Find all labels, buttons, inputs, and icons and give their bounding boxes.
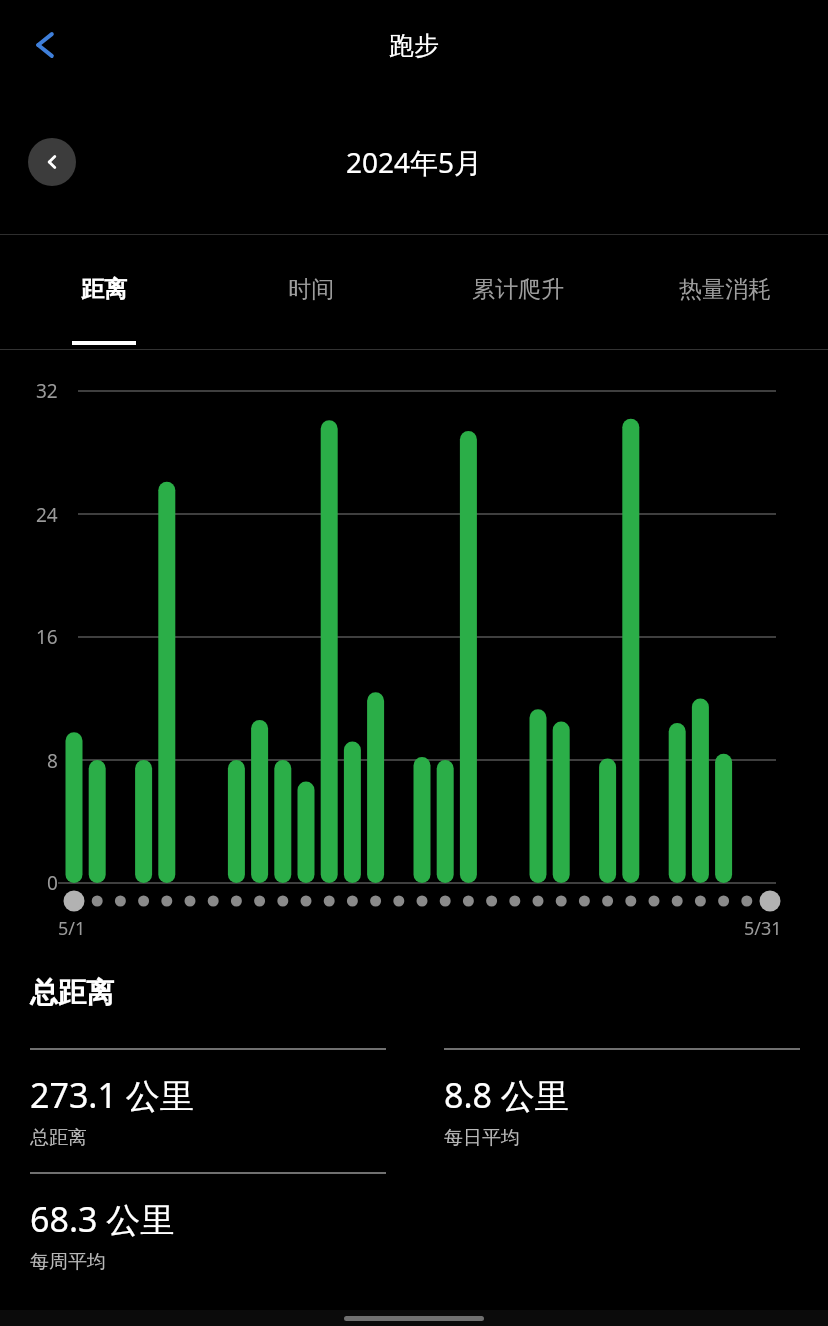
staticText: 68.3 公里 bbox=[30, 1196, 175, 1242]
staticText: 跑步 bbox=[389, 30, 439, 61]
button[interactable]: 时间 bbox=[207, 235, 414, 350]
button[interactable]: 累计爬升 bbox=[414, 235, 621, 350]
staticText: 5/31 bbox=[744, 916, 782, 941]
button[interactable]: 68.3 公里 bbox=[30, 1172, 386, 1296]
button[interactable]: Previous month bbox=[28, 138, 76, 186]
staticText: 8 bbox=[47, 748, 58, 774]
staticText: 每日平均 bbox=[444, 1126, 520, 1150]
staticText: 0 bbox=[47, 870, 58, 896]
button[interactable]: 距离 bbox=[0, 235, 207, 350]
staticText: 累计爬升 bbox=[472, 275, 564, 304]
button[interactable]: 热量消耗 bbox=[621, 235, 828, 350]
staticText: 总距离 bbox=[30, 975, 114, 1010]
staticText: 32 bbox=[36, 378, 58, 404]
button[interactable]: 8.8 公里 bbox=[444, 1048, 800, 1172]
staticText: 热量消耗 bbox=[679, 275, 771, 304]
staticText: 每周平均 bbox=[30, 1250, 106, 1274]
staticText: 24 bbox=[36, 502, 58, 528]
button[interactable]: 273.1 公里 bbox=[30, 1048, 386, 1172]
staticText: 8.8 公里 bbox=[444, 1072, 569, 1118]
staticText: 16 bbox=[36, 624, 58, 650]
button[interactable]: Back bbox=[10, 10, 80, 80]
staticText: 2024年5月 bbox=[346, 143, 483, 181]
staticText: 273.1 公里 bbox=[30, 1072, 194, 1118]
staticText: 距离 bbox=[81, 275, 127, 304]
staticText: 时间 bbox=[288, 275, 334, 304]
staticText: 5/1 bbox=[58, 916, 86, 941]
staticText: 总距离 bbox=[30, 1126, 87, 1150]
